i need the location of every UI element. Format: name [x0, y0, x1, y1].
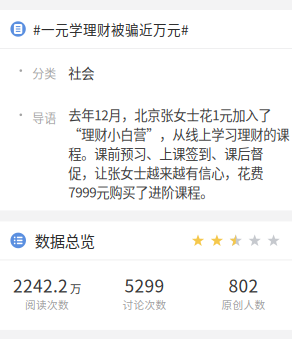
- staticText: 5299: [124, 272, 164, 297]
- button[interactable]: 数据总览: [0, 221, 292, 259]
- staticText: 阅读次数: [25, 297, 69, 312]
- staticText: 讨论次数: [122, 297, 166, 312]
- staticText: 数据总览: [35, 229, 95, 251]
- staticText: 万: [70, 280, 81, 296]
- button[interactable]: #一元学理财被骗近万元#: [0, 10, 292, 48]
- staticText: 去年12月，北京张女士花1元加入了 “理财小白营”，从线上学习理财的课 程。课前…: [68, 105, 289, 201]
- staticText: 分类: [32, 64, 56, 82]
- staticText: 社会: [68, 63, 94, 82]
- staticText: #一元学理财被骗近万元#: [33, 19, 189, 39]
- staticText: 导语: [32, 109, 56, 127]
- staticText: 2242.2: [13, 272, 68, 297]
- staticText: 802: [228, 272, 258, 297]
- staticText: 原创人数: [221, 297, 265, 312]
